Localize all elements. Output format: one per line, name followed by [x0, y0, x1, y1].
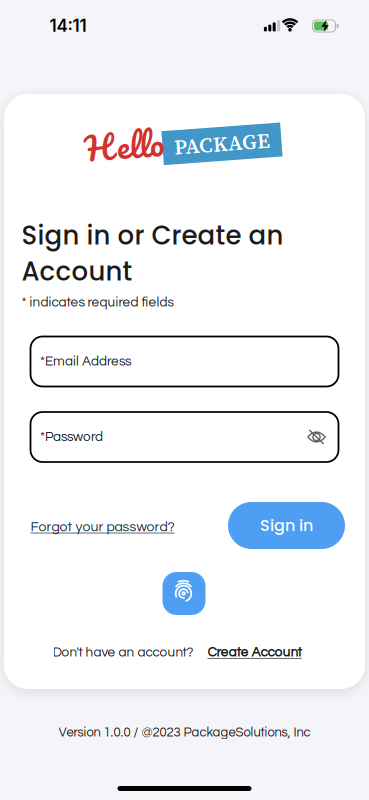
- staticText: Sign in or Create an: [21, 217, 283, 254]
- button[interactable]: Sign in: [228, 502, 345, 549]
- button[interactable]: Forgot your password?: [30, 520, 174, 534]
- button[interactable]: Create Account: [207, 646, 301, 659]
- staticText: PACKAGE: [174, 130, 270, 158]
- staticText: *Password: [40, 430, 103, 444]
- button[interactable]: *Password: [30, 412, 338, 462]
- staticText: 14:11: [49, 15, 86, 36]
- staticText: Version 1.0.0 / @2023 PackageSolutions, …: [58, 726, 310, 739]
- staticText: Don't have an account?: [52, 646, 193, 659]
- staticText: Sign in: [260, 514, 313, 537]
- staticText: Hello: [84, 117, 163, 174]
- button[interactable]: *Email Address: [30, 336, 338, 386]
- staticText: Account: [21, 253, 132, 290]
- button[interactable]: Show password: [300, 422, 332, 451]
- staticText: Forgot your password?: [30, 520, 174, 534]
- staticText: * indicates required fields: [21, 296, 173, 309]
- button[interactable]: Sign in with fingerprint: [162, 572, 205, 615]
- staticText: *Email Address: [40, 355, 131, 368]
- staticText: Create Account: [207, 646, 301, 659]
